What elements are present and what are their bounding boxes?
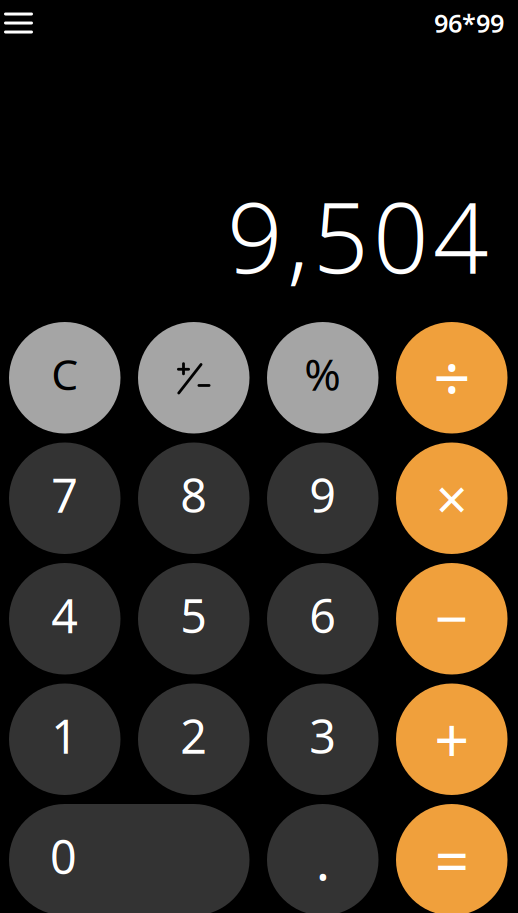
button[interactable]: 1: [9, 683, 120, 795]
staticText: 1: [51, 705, 78, 767]
staticText: 6: [309, 584, 336, 646]
button[interactable]: 9: [267, 442, 378, 554]
staticText: C: [51, 345, 78, 402]
button[interactable]: Toggle sign: [138, 322, 249, 433]
button[interactable]: C: [9, 322, 120, 433]
staticText: .: [316, 824, 330, 895]
button[interactable]: 0: [9, 804, 249, 913]
button[interactable]: 2: [138, 683, 249, 795]
button[interactable]: =: [396, 804, 507, 913]
staticText: 2: [180, 705, 207, 767]
staticText: ÷: [433, 333, 470, 420]
button[interactable]: ×: [396, 442, 507, 554]
button[interactable]: 3: [267, 683, 378, 795]
staticText: 96*99: [434, 6, 504, 40]
button[interactable]: .: [267, 804, 378, 913]
button[interactable]: %: [267, 322, 378, 433]
staticText: ×: [436, 461, 468, 535]
button[interactable]: 4: [9, 563, 120, 674]
staticText: %: [304, 344, 341, 403]
button[interactable]: −: [396, 563, 507, 674]
staticText: 3: [309, 705, 336, 767]
button[interactable]: 8: [138, 442, 249, 554]
staticText: 9: [309, 464, 336, 526]
button[interactable]: 7: [9, 442, 120, 554]
staticText: 7: [51, 464, 78, 526]
staticText: 8: [180, 464, 207, 526]
staticText: =: [435, 820, 469, 900]
button[interactable]: +: [396, 683, 507, 795]
button[interactable]: 5: [138, 563, 249, 674]
staticText: 4: [51, 584, 78, 646]
staticText: −: [435, 579, 469, 657]
staticText: 0: [50, 825, 77, 887]
staticText: +: [434, 698, 469, 780]
button[interactable]: Menu: [4, 0, 42, 46]
button[interactable]: 6: [267, 563, 378, 674]
staticText: 9,504: [227, 171, 489, 300]
staticText: 5: [180, 584, 207, 646]
button[interactable]: ÷: [396, 322, 507, 433]
